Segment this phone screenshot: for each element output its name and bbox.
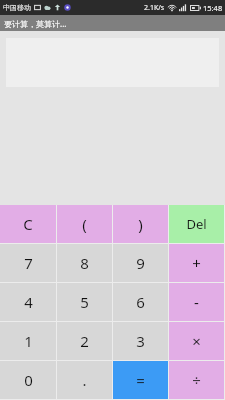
staticText: ÷ xyxy=(192,370,201,390)
staticText: - xyxy=(194,292,199,312)
button[interactable]: 9 xyxy=(113,244,168,282)
staticText: + xyxy=(192,253,201,273)
button[interactable]: 5 xyxy=(57,283,112,321)
staticText: 8 xyxy=(80,253,89,273)
staticText: 6 xyxy=(136,292,145,312)
button[interactable]: 8 xyxy=(57,244,112,282)
button[interactable]: 0 xyxy=(0,361,56,399)
staticText: 4 xyxy=(24,292,33,312)
button[interactable]: ( xyxy=(57,205,112,243)
button[interactable]: 6 xyxy=(113,283,168,321)
button[interactable]: 2 xyxy=(57,322,112,360)
staticText: C xyxy=(23,214,33,234)
staticText: 要计算，莫算计... xyxy=(4,18,67,29)
button[interactable]: × xyxy=(169,322,224,360)
button[interactable]: ÷ xyxy=(169,361,224,399)
staticText: 1 xyxy=(24,331,33,351)
button[interactable]: + xyxy=(169,244,224,282)
button[interactable]: ) xyxy=(113,205,168,243)
staticText: 15:48 xyxy=(203,3,223,13)
staticText: 5 xyxy=(80,292,89,312)
staticText: × xyxy=(192,331,201,351)
staticText: 2 xyxy=(80,331,89,351)
button[interactable]: Del xyxy=(169,205,224,243)
staticText: 7 xyxy=(24,253,33,273)
staticText: 0 xyxy=(24,370,33,390)
staticText: Del xyxy=(186,215,207,233)
button[interactable]: - xyxy=(169,283,224,321)
button[interactable]: C xyxy=(0,205,56,243)
button[interactable]: 3 xyxy=(113,322,168,360)
staticText: . xyxy=(82,370,87,390)
staticText: = xyxy=(136,370,145,390)
button[interactable]: 4 xyxy=(0,283,56,321)
button[interactable]: 1 xyxy=(0,322,56,360)
button[interactable]: = xyxy=(113,361,168,399)
staticText: 3 xyxy=(136,331,145,351)
staticText: 中国移动 xyxy=(3,3,31,12)
staticText: ) xyxy=(138,214,143,234)
button[interactable]: 7 xyxy=(0,244,56,282)
button[interactable]: . xyxy=(57,361,112,399)
staticText: 9 xyxy=(136,253,145,273)
staticText: ( xyxy=(82,214,87,234)
staticText: 2.1K/s xyxy=(144,3,165,13)
